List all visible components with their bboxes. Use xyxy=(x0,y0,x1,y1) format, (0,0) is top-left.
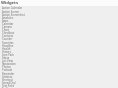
button[interactable]: Favorites xyxy=(0,41,118,44)
button[interactable]: Camera xyxy=(0,25,118,28)
staticText: Shortcut xyxy=(2,78,13,81)
staticText: Counter xyxy=(2,37,13,40)
staticText: Calendar xyxy=(2,22,14,25)
staticText: Headline xyxy=(2,44,14,47)
staticText: Navigation xyxy=(2,62,16,65)
button[interactable]: Health xyxy=(0,47,118,50)
staticText: Action Screen xyxy=(2,10,20,13)
staticText: Toolbar xyxy=(2,87,12,88)
button[interactable]: Headline xyxy=(0,44,118,47)
button[interactable]: Inbox xyxy=(0,56,118,59)
button[interactable]: Action Calendar xyxy=(0,6,118,9)
staticText: Health xyxy=(2,47,11,50)
button[interactable]: Icon Pack xyxy=(0,53,118,56)
staticText: Camera xyxy=(2,25,12,28)
staticText: Chart xyxy=(2,28,9,31)
button[interactable]: Chart xyxy=(0,28,118,31)
staticText: Widgets xyxy=(1,0,19,6)
button[interactable]: History xyxy=(0,50,118,53)
staticText: Action Screenshot xyxy=(2,13,25,16)
button[interactable]: Checkbox xyxy=(0,31,118,34)
button[interactable]: Apps xyxy=(0,19,118,22)
staticText: Photos xyxy=(2,65,11,68)
staticText: Contacts xyxy=(2,34,14,37)
staticText: Checkbox xyxy=(2,31,15,34)
staticText: Apps xyxy=(2,19,9,22)
staticText: History xyxy=(2,50,12,53)
staticText: Reminder xyxy=(2,72,15,75)
button[interactable]: Contacts xyxy=(0,34,118,37)
button[interactable]: Navigation xyxy=(0,62,118,65)
button[interactable]: Reminder xyxy=(0,72,118,75)
button[interactable]: Podcast xyxy=(0,68,118,71)
button[interactable]: Analytics xyxy=(0,16,118,19)
staticText: Settings xyxy=(2,75,13,78)
staticText: Action Calendar xyxy=(2,6,23,9)
button[interactable]: List View xyxy=(0,59,118,62)
button[interactable]: Settings xyxy=(0,75,118,78)
staticText: Favorites xyxy=(2,41,14,44)
staticText: Analytics xyxy=(2,16,14,19)
button[interactable]: Text Field xyxy=(0,84,118,87)
staticText: Inbox xyxy=(2,56,10,59)
button[interactable]: Counter xyxy=(0,37,118,40)
staticText: Speed Dial xyxy=(2,81,16,84)
staticText: Text Field xyxy=(2,84,14,87)
button[interactable]: Speed Dial xyxy=(0,81,118,84)
button[interactable]: Calendar xyxy=(0,22,118,25)
button[interactable]: Action Screenshot xyxy=(0,13,118,16)
staticText: List View xyxy=(2,59,13,62)
staticText: Podcast xyxy=(2,68,12,71)
button[interactable]: Action Screen xyxy=(0,10,118,13)
button[interactable]: Toolbar xyxy=(0,87,118,88)
button[interactable]: Shortcut xyxy=(0,78,118,81)
button[interactable]: Photos xyxy=(0,65,118,68)
staticText: Icon Pack xyxy=(2,53,15,56)
